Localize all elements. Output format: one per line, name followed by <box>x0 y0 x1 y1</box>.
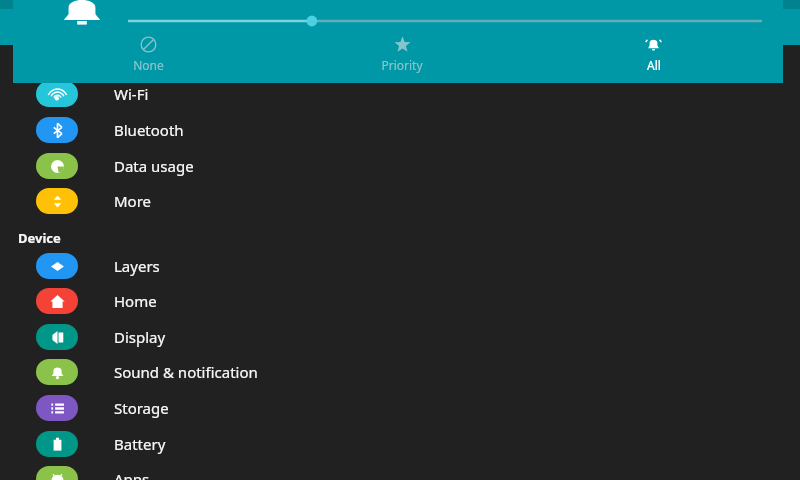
button[interactable]: Wi-Fi <box>0 76 800 112</box>
button[interactable]: Volume slider <box>121 13 769 29</box>
staticText: Storage <box>114 398 169 418</box>
staticText: Data usage <box>114 156 194 176</box>
staticText: Display <box>114 327 166 347</box>
staticText: Battery <box>114 434 166 454</box>
button[interactable]: None <box>93 36 203 81</box>
staticText: Layers <box>114 256 160 276</box>
button[interactable]: Apps <box>0 461 800 480</box>
button[interactable]: Display <box>0 319 800 355</box>
button[interactable]: Bluetooth <box>0 112 800 148</box>
staticText: Apps <box>114 469 150 480</box>
staticText: More <box>114 191 152 211</box>
staticText: Wi-Fi <box>114 84 149 104</box>
button[interactable]: Storage <box>0 390 800 426</box>
staticText: Priority <box>381 57 423 73</box>
button[interactable]: More <box>0 183 800 219</box>
button[interactable]: Battery <box>0 426 800 462</box>
button[interactable]: Home <box>0 283 800 319</box>
button[interactable]: Sound & notification <box>0 354 800 390</box>
staticText: Bluetooth <box>114 120 184 140</box>
staticText: None <box>133 57 164 73</box>
staticText: Sound & notification <box>114 362 258 382</box>
button[interactable]: Layers <box>0 248 800 284</box>
button[interactable]: All <box>598 36 708 81</box>
button[interactable]: Data usage <box>0 148 800 184</box>
button[interactable]: Priority <box>347 36 457 81</box>
staticText: Device <box>18 229 61 247</box>
staticText: All <box>647 57 661 73</box>
button[interactable]: Ringer volume <box>58 0 106 30</box>
staticText: Home <box>114 291 157 311</box>
